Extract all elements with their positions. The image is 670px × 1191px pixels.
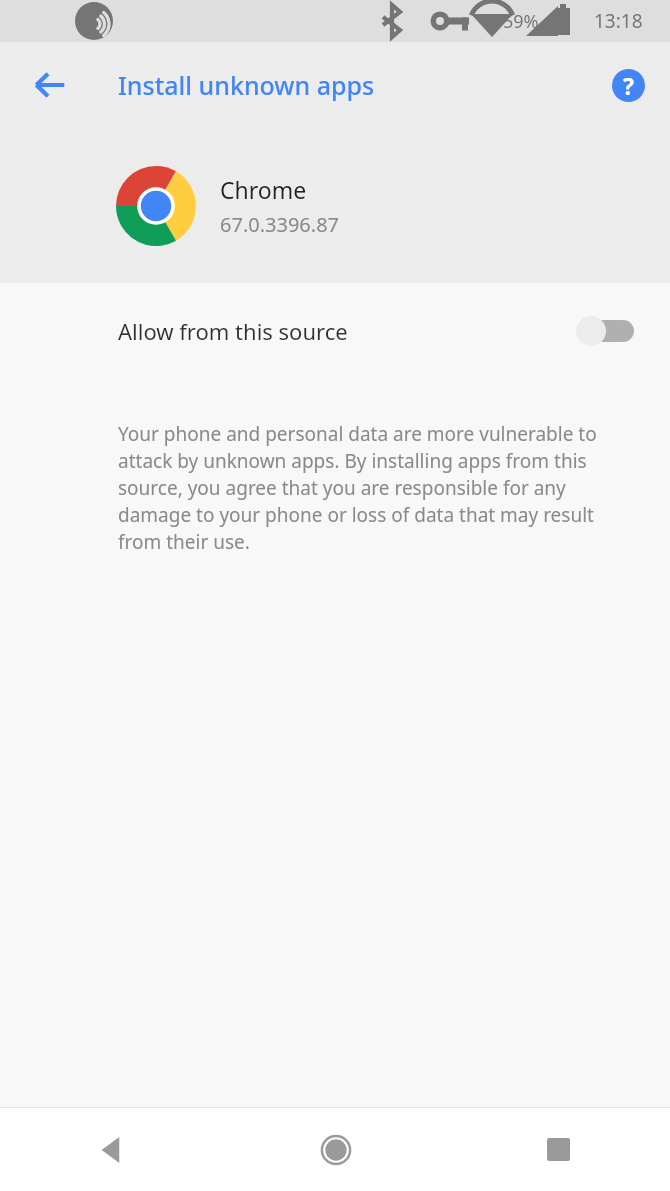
staticText: Allow from this source (118, 316, 576, 346)
staticText: Your phone and personal data are more vu… (118, 421, 636, 555)
staticText: ? (623, 70, 634, 101)
button[interactable]: Back (0, 1108, 224, 1191)
button[interactable]: Recent apps (447, 1108, 670, 1191)
button[interactable]: Allow from this source (0, 283, 670, 379)
button[interactable]: Home (224, 1108, 447, 1191)
staticText: 59% (503, 9, 539, 34)
staticText: Chrome (220, 174, 307, 205)
button[interactable]: Help (602, 59, 654, 111)
staticText: 13:18 (594, 8, 643, 34)
button[interactable]: Back (22, 57, 78, 113)
staticText: 67.0.3396.87 (220, 211, 340, 238)
staticText: Install unknown apps (118, 68, 375, 102)
button[interactable]: Chrome (0, 128, 670, 283)
